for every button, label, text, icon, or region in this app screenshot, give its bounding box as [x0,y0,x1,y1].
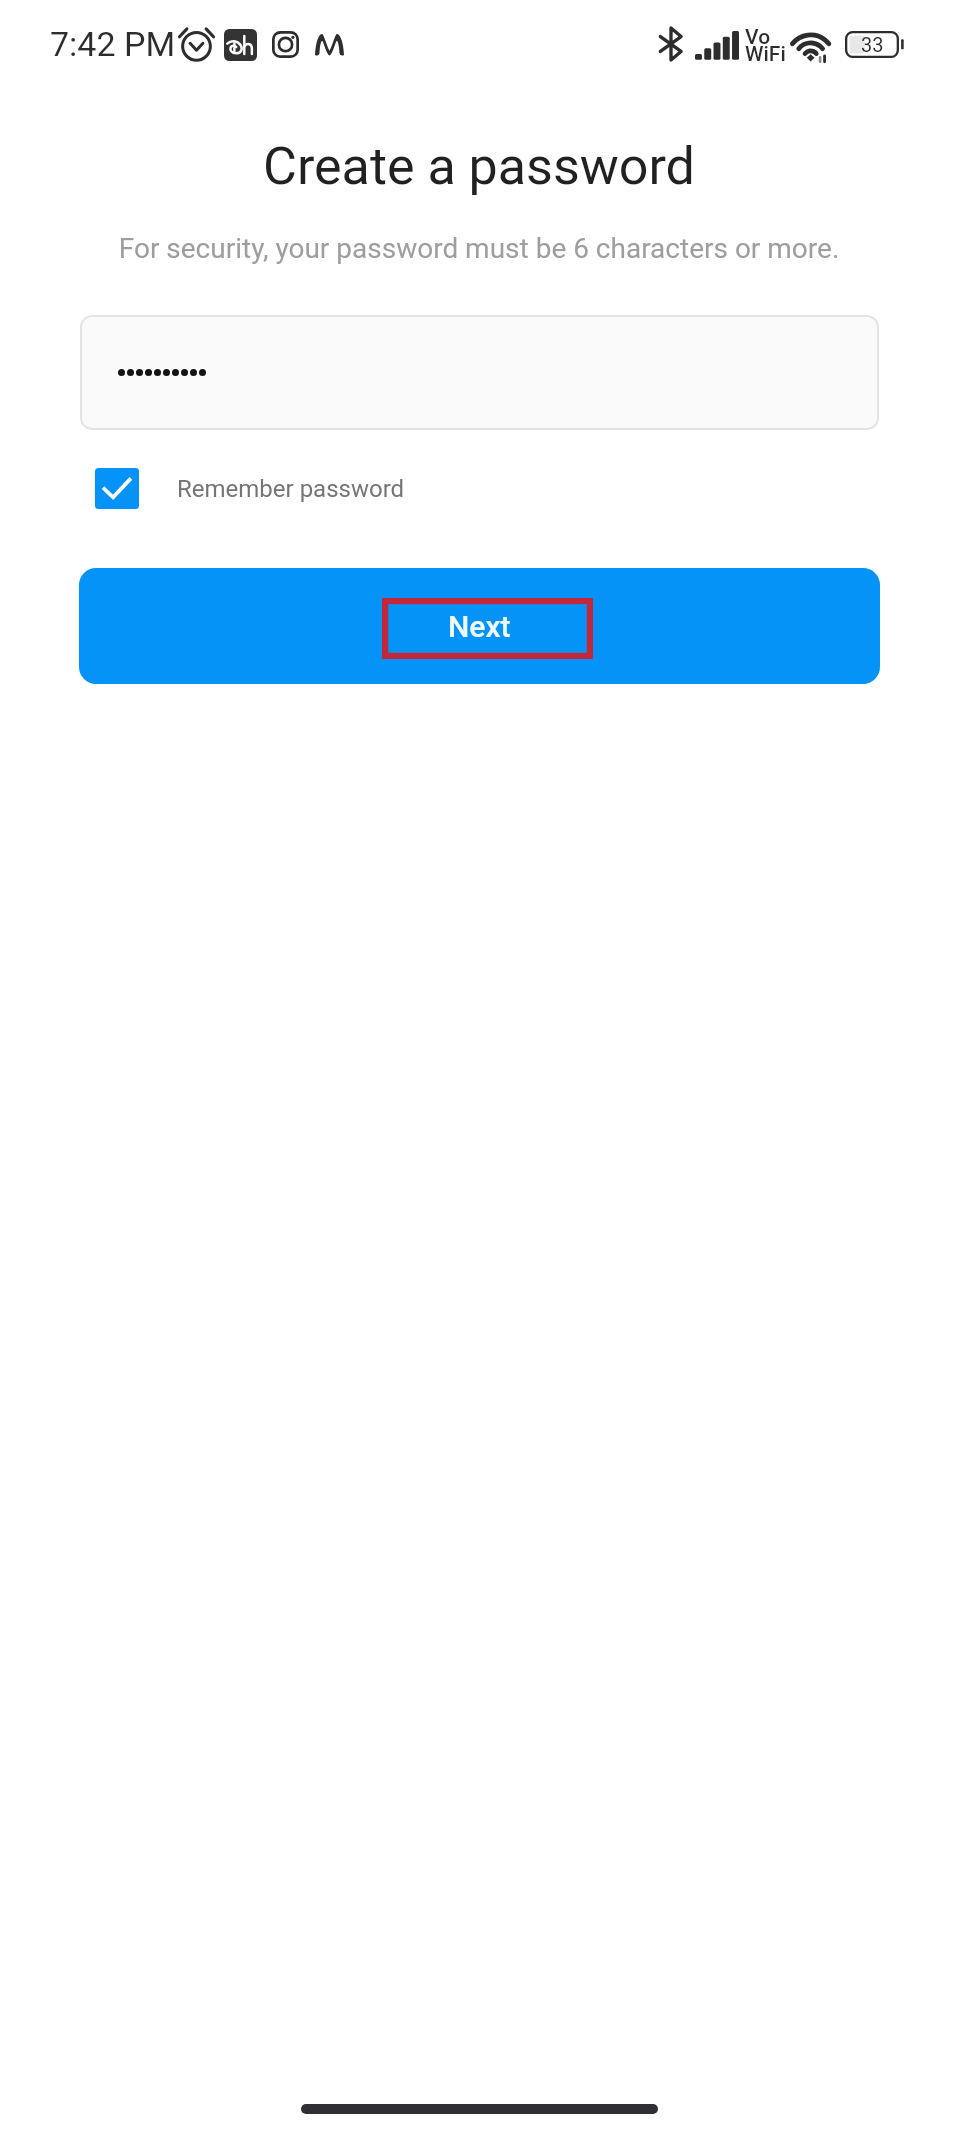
staticText: 33 [861,33,884,56]
staticText: 7:42 PM [50,24,176,64]
staticText: Create a password [0,136,958,197]
button[interactable]: Next [79,568,880,684]
button[interactable]: Remember password checkbox, checked [95,468,405,509]
staticText: Remember password [177,475,405,503]
staticText: WiFi [745,42,786,67]
button[interactable]: Password field [80,315,879,430]
staticText: Vo [745,25,771,50]
staticText: Next [448,609,511,644]
staticText: For security, your password must be 6 ch… [0,232,958,265]
